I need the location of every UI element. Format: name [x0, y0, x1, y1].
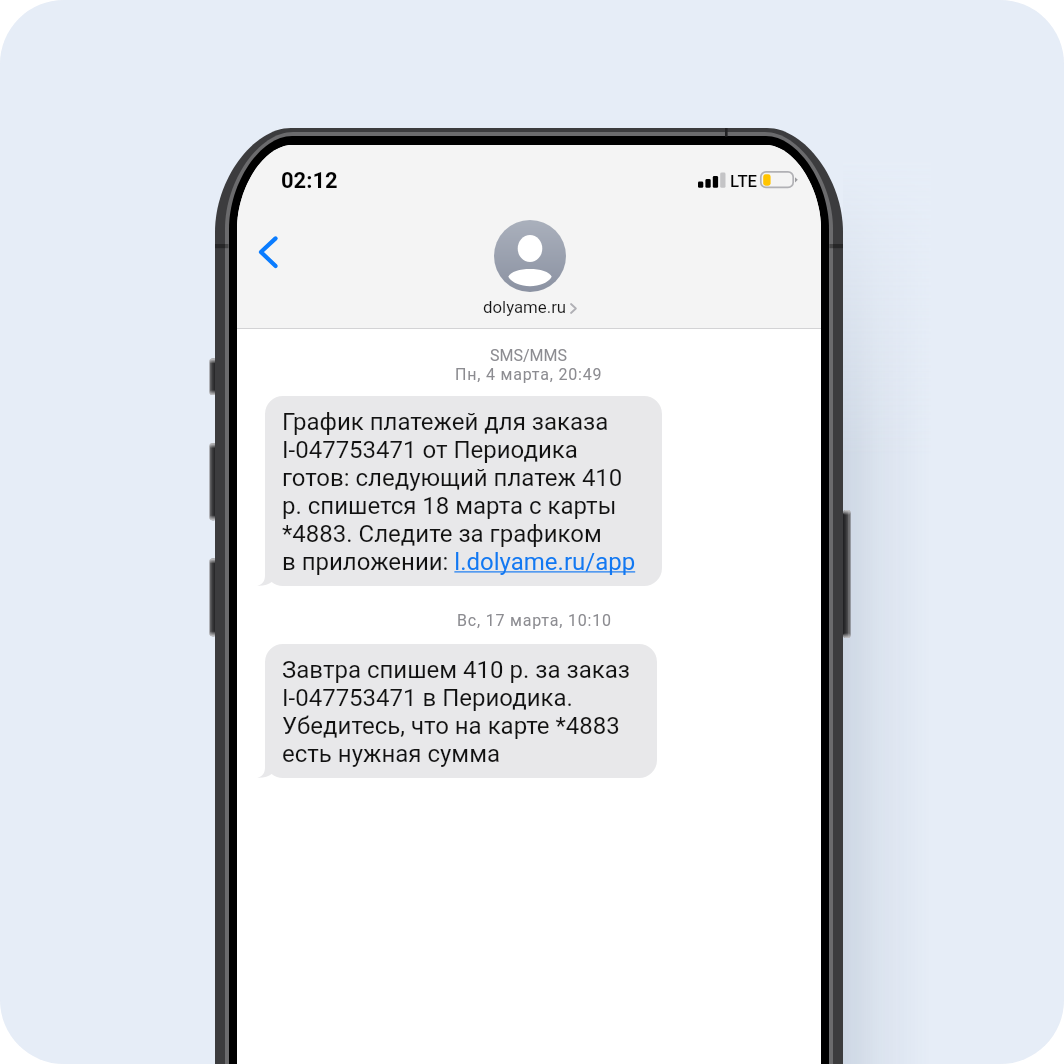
staticText: Завтра спишем 410 р. за заказ: [282, 656, 630, 684]
button[interactable]: Back: [248, 226, 300, 278]
staticText: *4883. Следите за графиком: [282, 520, 602, 548]
staticText: Убедитесь, что на карте *4883: [282, 712, 620, 740]
button[interactable]: dolyame.ru: [483, 297, 567, 321]
staticText: в приложении: l.dolyame.ru/app: [282, 548, 636, 576]
staticText: 02:12: [281, 168, 338, 194]
button[interactable]: Contact dolyame.ru: [494, 220, 566, 292]
button[interactable]: Завтра спишем 410 р. за заказ: [265, 644, 657, 778]
button[interactable]: Open l.dolyame.ru/app: [265, 396, 662, 586]
staticText: dolyame.ru: [483, 297, 567, 317]
staticText: готов: следующий платеж 410: [282, 464, 623, 492]
staticText: есть нужная сумма: [282, 740, 500, 768]
staticText: График платежей для заказа: [282, 408, 609, 436]
staticText: Вс, 17 марта, 10:10: [457, 611, 612, 630]
staticText: I-047753471 в Периодика.: [282, 684, 573, 712]
staticText: SMS/MMS: [490, 346, 568, 365]
staticText: Пн, 4 марта, 20:49: [455, 365, 603, 384]
staticText: р. спишется 18 марта с карты: [282, 492, 617, 520]
staticText: LTE: [730, 171, 758, 191]
button[interactable]: Open l.dolyame.ru/app: [455, 546, 640, 574]
staticText: I-047753471 от Периодика: [282, 436, 578, 464]
